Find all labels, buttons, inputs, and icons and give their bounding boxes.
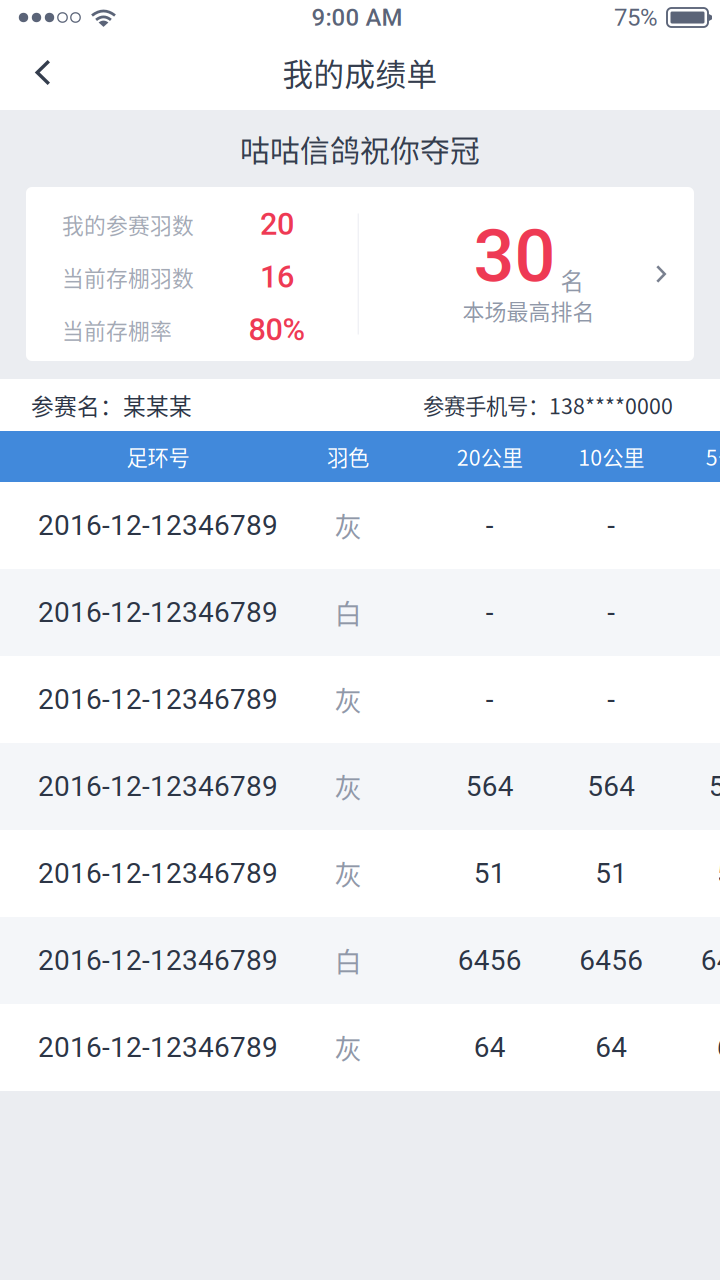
staticText: 2016-12-12346789 (38, 857, 278, 890)
staticText: 64 (595, 1031, 627, 1064)
staticText: 灰 (334, 680, 361, 719)
staticText: 2016-12-12346789 (38, 596, 278, 629)
staticText: 20公里 (457, 441, 523, 472)
staticText: 51 (474, 857, 506, 890)
staticText: 80% (248, 312, 305, 348)
staticText: 灰 (334, 1028, 361, 1067)
staticText: 我的参赛羽数 (62, 208, 194, 240)
staticText: 9:00 AM (311, 3, 402, 31)
button[interactable]: 2016-12-12346789 (0, 743, 720, 830)
staticText: 当前存棚羽数 (62, 261, 194, 293)
staticText: 2016-12-12346789 (38, 509, 278, 542)
staticText: 参赛名：某某某 (31, 389, 192, 421)
button[interactable]: 2016-12-12346789 (0, 917, 720, 1004)
button[interactable]: 2016-12-12346789 (0, 482, 720, 569)
staticText: 6456 (701, 944, 720, 977)
staticText: 20 (260, 206, 294, 242)
button[interactable]: 2016-12-12346789 (0, 830, 720, 917)
staticText: 30 (473, 214, 555, 299)
staticText: 564 (587, 770, 635, 803)
staticText: 咕咕信鸽祝你夺冠 (240, 127, 480, 170)
staticText: 16 (260, 259, 294, 295)
staticText: 51 (595, 857, 627, 890)
staticText: 10公里 (578, 441, 644, 472)
staticText: 6456 (579, 944, 643, 977)
staticText: 足环号 (126, 441, 189, 472)
button[interactable]: Back (0, 44, 86, 101)
staticText: 6456 (458, 944, 522, 977)
staticText: - (486, 509, 494, 542)
staticText: 75% (614, 3, 658, 31)
staticText: 2016-12-12346789 (38, 1031, 278, 1064)
staticText: 白 (334, 593, 361, 632)
staticText: 灰 (334, 506, 361, 545)
staticText: 我的成绩单 (282, 50, 437, 95)
staticText: 本场最高排名 (462, 295, 594, 326)
staticText: 51 (717, 857, 720, 890)
staticText: 当前存棚率 (62, 314, 172, 346)
staticText: 名 (560, 263, 583, 297)
button[interactable]: 30 (359, 187, 694, 361)
staticText: 564 (466, 770, 514, 803)
button[interactable]: 2016-12-12346789 (0, 569, 720, 656)
staticText: 5公里 (706, 441, 720, 472)
button[interactable]: 2016-12-12346789 (0, 1004, 720, 1091)
staticText: 2016-12-12346789 (38, 944, 278, 977)
staticText: - (607, 509, 615, 542)
staticText: 2016-12-12346789 (38, 770, 278, 803)
staticText: 64 (717, 1031, 720, 1064)
staticText: - (607, 596, 615, 629)
staticText: 灰 (334, 854, 361, 893)
staticText: 564 (709, 770, 720, 803)
staticText: 灰 (334, 767, 361, 806)
staticText: - (607, 683, 615, 716)
staticText: - (486, 683, 494, 716)
button[interactable]: 2016-12-12346789 (0, 656, 720, 743)
staticText: - (486, 596, 494, 629)
staticText: 参赛手机号：138****0000 (423, 390, 673, 420)
staticText: 羽色 (327, 441, 369, 472)
staticText: 2016-12-12346789 (38, 683, 278, 716)
staticText: 64 (474, 1031, 506, 1064)
staticText: 白 (334, 941, 361, 980)
